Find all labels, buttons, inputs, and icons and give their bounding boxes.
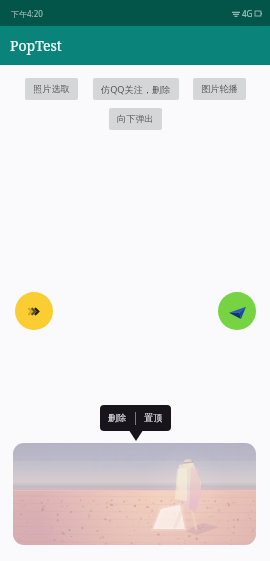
button[interactable]: 置顶 [136, 408, 171, 428]
button[interactable] [13, 443, 256, 545]
button[interactable]: 图片轮播 [193, 78, 246, 100]
button[interactable]: 向下弹出 [109, 108, 162, 130]
button[interactable]: 仿QQ关注，删除 [93, 78, 179, 100]
button[interactable]: Send [218, 292, 256, 330]
staticText: 置顶 [144, 412, 163, 424]
staticText: 向下弹出 [117, 113, 154, 125]
button[interactable]: Fast forward [15, 292, 53, 330]
button[interactable]: 删除 [100, 408, 135, 428]
staticText: 仿QQ关注，删除 [101, 83, 171, 96]
staticText: 图片轮播 [201, 83, 238, 95]
staticText: PopTest [10, 36, 62, 55]
staticText: 删除 [108, 412, 127, 424]
staticText: 照片选取 [33, 83, 70, 95]
staticText: 下午4:20 [11, 8, 43, 19]
staticText: 4G [242, 8, 253, 19]
button[interactable]: 照片选取 [25, 78, 78, 100]
